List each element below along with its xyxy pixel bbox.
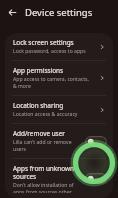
button[interactable]: Toggle Apps from unknown sources [85,173,107,184]
staticText: Add/remove user [13,129,65,138]
button[interactable]: Apps from unknown sources [5,159,113,198]
staticText: Don't allow installation of apps from so… [13,182,81,193]
button[interactable]: Lock screen settings [5,33,113,60]
staticText: Lock password, access to apps [13,48,86,55]
staticText: App permissions [13,66,64,75]
staticText: Lilla can't add or remove users [13,139,81,153]
button[interactable]: App permissions [5,61,113,95]
staticText: Device settings [25,6,93,19]
staticText: Apps from unknown sources [13,164,81,181]
staticText: Location access & accuracy [13,111,78,118]
button[interactable]: Toggle Add/remove user [85,136,107,147]
staticText: Location sharing [13,101,64,110]
button[interactable]: Location sharing [5,96,113,123]
button[interactable]: Add/remove user [5,124,113,158]
button[interactable]: Back [3,3,21,21]
staticText: App access to camera, contacts, & more [13,76,93,90]
staticText: Lock screen settings [13,38,74,47]
